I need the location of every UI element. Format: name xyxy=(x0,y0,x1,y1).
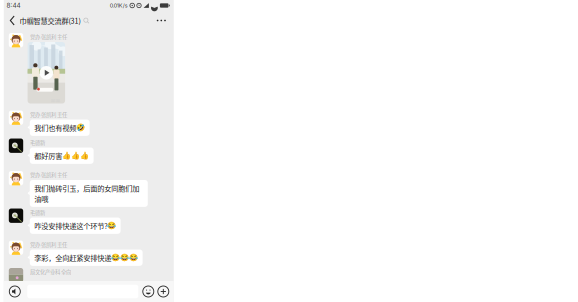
staticText: 李彩，全向赶紧安排快递😂😂😂 xyxy=(34,252,138,263)
staticText: 我们也有视频🤣 xyxy=(34,122,85,133)
staticText: 都好厉害👍👍👍 xyxy=(34,150,89,161)
staticText: 咋没安排快递这个环节?😂 xyxy=(34,220,116,231)
staticText: 8:44 xyxy=(7,2,21,9)
staticText: 党办 张凯利 主任 xyxy=(30,33,67,41)
staticText: 局文化产业科 全向 xyxy=(30,268,71,276)
staticText: 毛德新 xyxy=(30,138,45,146)
staticText: 党办 张凯利 主任 xyxy=(30,110,67,118)
staticText: 0.01K/s xyxy=(110,2,128,9)
staticText: 党办 张凯利 主任 xyxy=(30,240,67,248)
staticText: 我们抛砖引玉，后面的女同胞们加油哦 xyxy=(34,183,139,204)
staticText: 巾帼智慧交流群(31) xyxy=(19,15,80,26)
button[interactable]: Emoji xyxy=(141,281,156,302)
button[interactable]: Back xyxy=(5,12,19,28)
button[interactable]: More xyxy=(151,12,171,28)
staticText: 毛德新 xyxy=(30,208,45,216)
staticText: 党办 张凯利 主任 xyxy=(30,171,67,179)
button[interactable]: Voice input xyxy=(7,281,23,302)
button[interactable]: More actions xyxy=(156,281,171,302)
